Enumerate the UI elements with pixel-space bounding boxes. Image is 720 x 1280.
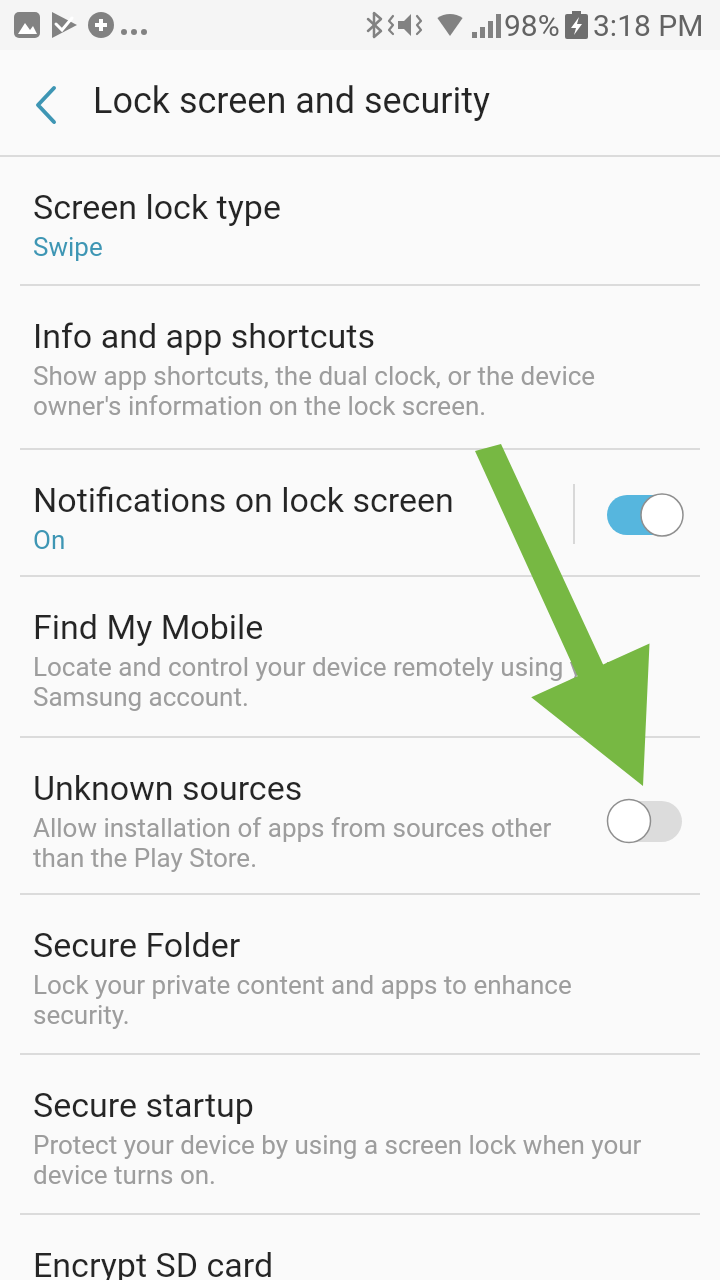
staticText: Swipe	[33, 232, 103, 262]
staticText: Info and app shortcuts	[33, 316, 376, 356]
staticText: Locate and control your device remotely …	[33, 652, 620, 712]
staticText: On	[33, 525, 66, 555]
button[interactable]	[600, 490, 690, 540]
staticText: Secure startup	[33, 1085, 254, 1125]
button[interactable]: Secure startup	[0, 1055, 720, 1215]
staticText: Protect your device by using a screen lo…	[33, 1130, 642, 1190]
staticText: Notifications on lock screen	[33, 480, 454, 520]
staticText: Allow installation of apps from sources …	[33, 813, 552, 873]
button[interactable]	[600, 796, 690, 846]
staticText: Show app shortcuts, the dual clock, or t…	[33, 361, 596, 421]
staticText: Lock your private content and apps to en…	[33, 970, 572, 1030]
button[interactable]: Find My Mobile	[0, 577, 720, 738]
staticText: Screen lock type	[33, 187, 281, 227]
staticText: Unknown sources	[33, 768, 303, 808]
staticText: Encrypt SD card	[33, 1245, 274, 1280]
staticText: 98%	[504, 8, 560, 43]
staticText: Secure Folder	[33, 925, 241, 965]
button[interactable]	[0, 50, 70, 155]
button[interactable]: Screen lock type	[0, 157, 720, 286]
button[interactable]: Encrypt SD card	[0, 1215, 720, 1280]
button[interactable]: Notifications on lock screen	[0, 450, 720, 577]
staticText: Lock screen and security	[93, 80, 491, 122]
staticText: Find My Mobile	[33, 607, 264, 647]
button[interactable]: Secure Folder	[0, 895, 720, 1055]
button[interactable]: Unknown sources	[0, 738, 720, 895]
staticText: 3:18 PM	[593, 8, 704, 43]
button[interactable]: Info and app shortcuts	[0, 286, 720, 450]
